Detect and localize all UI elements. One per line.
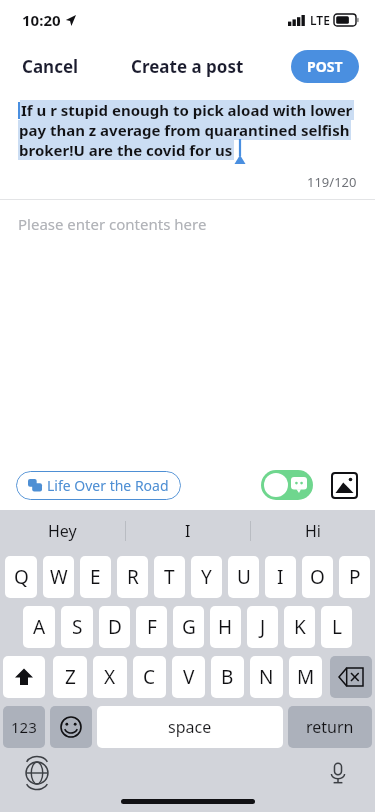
button[interactable]: Emoji — [50, 706, 92, 748]
staticText: V — [183, 664, 195, 690]
staticText: L — [332, 614, 342, 640]
button[interactable]: O — [302, 556, 333, 598]
staticText: broker!U are the covid for us — [19, 140, 233, 160]
staticText: G — [182, 614, 196, 640]
staticText: 10:20 — [22, 10, 61, 30]
staticText: Please enter contents here — [18, 214, 207, 234]
button[interactable]: A — [23, 606, 55, 648]
button[interactable]: S — [61, 606, 93, 648]
staticText: Q — [14, 564, 29, 590]
staticText: B — [221, 664, 234, 690]
button[interactable]: Life Over the Road — [16, 471, 181, 500]
button[interactable]: Add image — [329, 470, 359, 500]
button[interactable]: Cancel — [10, 49, 91, 84]
staticText: C — [143, 664, 156, 690]
staticText: 123 — [11, 717, 37, 737]
staticText: N — [259, 664, 274, 690]
staticText: POST — [307, 57, 343, 76]
staticText: Y — [201, 564, 212, 590]
button[interactable]: return — [288, 706, 372, 748]
button[interactable]: Shift — [3, 656, 45, 698]
staticText: return — [306, 716, 354, 738]
button[interactable]: Y — [191, 556, 222, 598]
button[interactable]: D — [99, 606, 130, 648]
staticText: W — [50, 564, 68, 590]
staticText: M — [297, 664, 315, 690]
staticText: T — [164, 564, 175, 590]
button[interactable]: M — [289, 656, 322, 698]
staticText: R — [127, 564, 139, 590]
button[interactable]: L — [321, 606, 352, 648]
button[interactable]: Change keyboard — [22, 758, 52, 788]
button[interactable]: V — [172, 656, 205, 698]
button[interactable]: 123 — [3, 706, 45, 748]
button[interactable]: POST — [291, 50, 359, 83]
staticText: Cancel — [22, 55, 79, 78]
button[interactable]: Hi — [251, 510, 375, 552]
staticText: Z — [65, 664, 76, 690]
staticText: pay than z average from quarantined self… — [19, 120, 350, 140]
button[interactable]: Hey — [0, 510, 125, 552]
staticText: D — [108, 614, 122, 640]
staticText: X — [104, 664, 116, 690]
staticText: If u r stupid enough to pick aload with … — [21, 100, 353, 120]
staticText: I — [185, 520, 191, 542]
staticText: E — [90, 564, 101, 590]
staticText: H — [218, 614, 233, 640]
button[interactable]: space — [97, 706, 283, 748]
button[interactable]: Q — [5, 556, 37, 598]
button[interactable]: P — [339, 556, 370, 598]
staticText: Create a post — [131, 55, 244, 78]
button[interactable]: B — [211, 656, 244, 698]
staticText: P — [349, 564, 361, 590]
staticText: LTE — [310, 12, 330, 28]
staticText: O — [310, 564, 325, 590]
button[interactable]: T — [154, 556, 185, 598]
button[interactable]: Toggle comments — [261, 470, 313, 500]
button[interactable]: I — [265, 556, 296, 598]
button[interactable]: X — [93, 656, 127, 698]
staticText: 119/120 — [307, 173, 357, 191]
button[interactable]: G — [173, 606, 204, 648]
staticText: S — [72, 614, 83, 640]
staticText: Hey — [48, 520, 77, 542]
button[interactable]: R — [117, 556, 148, 598]
staticText: J — [260, 614, 266, 640]
staticText: F — [147, 614, 157, 640]
button[interactable]: F — [136, 606, 167, 648]
staticText: Life Over the Road — [47, 476, 169, 495]
staticText: K — [294, 614, 306, 640]
button[interactable]: Backspace — [330, 656, 372, 698]
button[interactable]: Z — [53, 656, 87, 698]
button[interactable]: U — [228, 556, 259, 598]
staticText: Hi — [305, 520, 321, 542]
staticText: A — [33, 614, 46, 640]
button[interactable]: N — [250, 656, 283, 698]
button[interactable]: E — [80, 556, 111, 598]
button[interactable]: C — [133, 656, 166, 698]
staticText: I — [277, 564, 284, 590]
button[interactable]: K — [284, 606, 315, 648]
button[interactable]: Dictation — [323, 758, 353, 788]
staticText: space — [168, 716, 212, 738]
staticText: U — [237, 564, 251, 590]
button[interactable]: J — [247, 606, 278, 648]
button[interactable]: H — [210, 606, 241, 648]
button[interactable]: I — [126, 510, 250, 552]
button[interactable]: W — [43, 556, 74, 598]
